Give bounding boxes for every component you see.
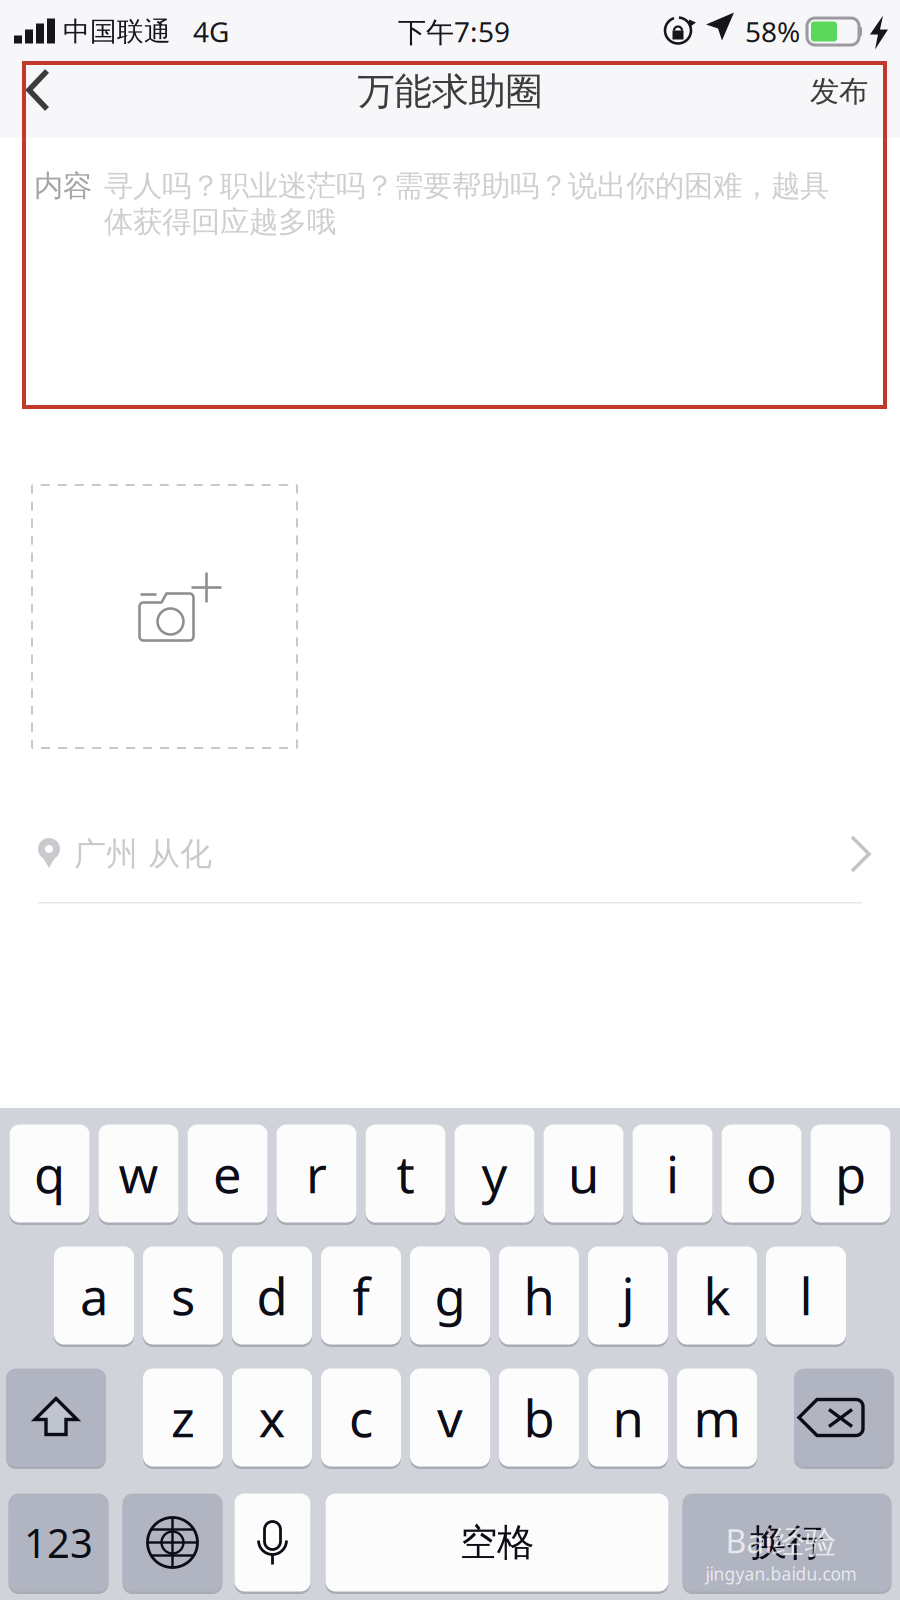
staticText: 广州 从化 xyxy=(74,834,212,874)
staticText: x xyxy=(258,1384,285,1451)
button[interactable]: Delete xyxy=(794,1367,894,1468)
staticText: r xyxy=(306,1140,327,1207)
button[interactable]: z xyxy=(143,1367,223,1468)
staticText: 发布 xyxy=(810,73,868,109)
staticText: b xyxy=(523,1384,554,1451)
staticText: 空格 xyxy=(460,1520,534,1565)
button[interactable]: m xyxy=(677,1367,757,1468)
button[interactable]: d xyxy=(232,1245,312,1346)
button[interactable]: w xyxy=(98,1123,178,1224)
button[interactable]: f xyxy=(321,1245,401,1346)
button[interactable]: c xyxy=(321,1367,401,1468)
staticText: 中国联通 xyxy=(63,15,171,48)
button[interactable]: s xyxy=(143,1245,223,1346)
staticText: y xyxy=(481,1140,507,1207)
button[interactable]: k xyxy=(677,1245,757,1346)
staticText: v xyxy=(437,1384,463,1451)
staticText: o xyxy=(746,1140,777,1207)
button[interactable]: r xyxy=(276,1123,356,1224)
staticText: i xyxy=(666,1140,679,1207)
staticText: 4G xyxy=(193,13,229,50)
staticText: a xyxy=(80,1262,108,1329)
button[interactable]: n xyxy=(588,1367,668,1468)
staticText: 123 xyxy=(24,1516,93,1569)
button[interactable]: h xyxy=(499,1245,579,1346)
staticText: k xyxy=(703,1262,730,1329)
button[interactable]: u xyxy=(543,1123,623,1224)
button[interactable]: e xyxy=(187,1123,267,1224)
button[interactable]: v xyxy=(410,1367,490,1468)
staticText: l xyxy=(799,1262,812,1329)
button[interactable]: b xyxy=(499,1367,579,1468)
staticText: j xyxy=(621,1262,634,1329)
button[interactable]: Add photo xyxy=(32,485,297,748)
staticText: h xyxy=(523,1262,554,1329)
staticText: s xyxy=(171,1262,195,1329)
button[interactable]: Shift xyxy=(6,1367,106,1468)
button[interactable]: x xyxy=(232,1367,312,1468)
button[interactable]: a xyxy=(54,1245,134,1346)
staticText: Bai经验 xyxy=(725,1520,836,1562)
button[interactable]: 空格 xyxy=(325,1492,668,1593)
button[interactable]: i xyxy=(632,1123,712,1224)
staticText: q xyxy=(34,1140,65,1207)
button[interactable]: q xyxy=(9,1123,89,1224)
button[interactable]: 换行 xyxy=(682,1492,891,1593)
button[interactable]: p xyxy=(810,1123,890,1224)
staticText: 换行 xyxy=(750,1520,824,1565)
staticText: u xyxy=(568,1140,599,1207)
button[interactable]: Dictate xyxy=(234,1492,310,1593)
staticText: 58% xyxy=(745,13,800,50)
staticText: p xyxy=(835,1140,866,1207)
staticText: w xyxy=(118,1140,158,1207)
staticText: n xyxy=(612,1384,643,1451)
button[interactable]: 发布 xyxy=(778,63,900,138)
staticText: m xyxy=(693,1384,740,1451)
button[interactable]: y xyxy=(454,1123,534,1224)
staticText: g xyxy=(434,1262,465,1329)
button[interactable]: j xyxy=(588,1245,668,1346)
staticText: jingyan.baidu.com xyxy=(705,1562,856,1585)
staticText: 下午7:59 xyxy=(398,13,510,50)
staticText: z xyxy=(171,1384,195,1451)
staticText: 内容 xyxy=(34,168,92,204)
button[interactable]: Back xyxy=(0,63,90,138)
button[interactable]: 123 xyxy=(8,1492,108,1593)
staticText: 寻人吗？职业迷茫吗？需要帮助吗？说出你的困难，越具体获得回应越多哦 xyxy=(104,168,829,240)
button[interactable]: t xyxy=(365,1123,445,1224)
staticText: 万能求助圈 xyxy=(357,69,542,114)
button[interactable]: l xyxy=(766,1245,846,1346)
button[interactable]: 广州 从化 xyxy=(0,806,900,903)
button[interactable]: o xyxy=(721,1123,801,1224)
staticText: c xyxy=(349,1384,373,1451)
button[interactable]: g xyxy=(410,1245,490,1346)
staticText: d xyxy=(256,1262,287,1329)
staticText: f xyxy=(352,1262,369,1329)
staticText: e xyxy=(213,1140,242,1207)
button[interactable]: Next keyboard xyxy=(122,1492,222,1593)
staticText: t xyxy=(396,1140,414,1207)
